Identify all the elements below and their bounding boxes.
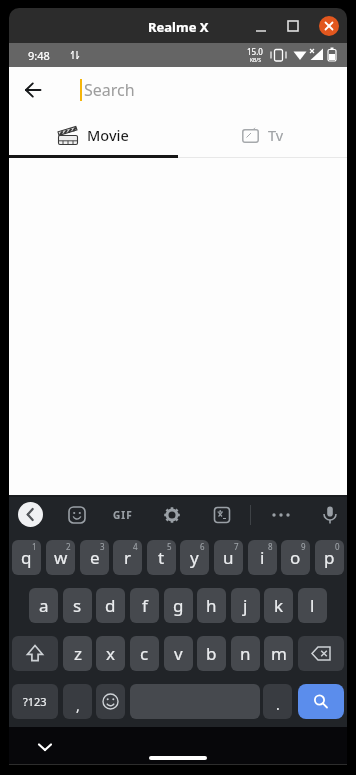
staticText: s	[73, 594, 82, 617]
button[interactable]: v	[164, 636, 193, 671]
button[interactable]	[66, 504, 88, 526]
staticText: h	[206, 594, 217, 617]
staticText: 7	[234, 541, 239, 552]
button[interactable]: m	[264, 636, 293, 671]
button[interactable]: ,	[63, 684, 92, 719]
button[interactable]: w	[46, 540, 75, 575]
button[interactable]: t	[147, 540, 176, 575]
staticText: p	[324, 546, 335, 569]
staticText: ,	[76, 696, 80, 715]
staticText: y	[190, 546, 199, 569]
button[interactable]: s	[63, 588, 92, 623]
button[interactable]	[281, 14, 305, 38]
staticText: i	[260, 546, 265, 569]
button[interactable]	[33, 735, 57, 759]
staticText: o	[290, 546, 301, 569]
staticText: a	[39, 594, 49, 617]
staticText: j	[243, 594, 248, 617]
staticText: e	[90, 546, 100, 569]
staticText: k	[274, 594, 284, 617]
staticText: Tv	[268, 125, 284, 145]
button[interactable]	[18, 502, 43, 527]
button[interactable]: e	[80, 540, 109, 575]
button[interactable]: f	[130, 588, 159, 623]
button[interactable]: y	[180, 540, 209, 575]
button[interactable]: j	[231, 588, 260, 623]
staticText: 6	[200, 541, 205, 552]
button[interactable]: p	[315, 540, 344, 575]
staticText: KB/S	[250, 57, 261, 64]
button[interactable]: u	[214, 540, 243, 575]
button[interactable]	[17, 74, 49, 106]
staticText: 9:48	[28, 48, 50, 63]
button[interactable]: Movie	[9, 112, 178, 158]
staticText: z	[74, 642, 82, 665]
button[interactable]: x	[96, 636, 125, 671]
button[interactable]: Tv	[178, 112, 347, 158]
button[interactable]	[270, 504, 292, 526]
staticText: u	[223, 546, 234, 569]
button[interactable]: k	[264, 588, 293, 623]
button[interactable]	[298, 636, 344, 671]
staticText: d	[105, 594, 116, 617]
button[interactable]	[249, 14, 273, 38]
staticText: g	[173, 594, 184, 617]
staticText: r	[124, 546, 132, 569]
staticText: ?123	[23, 694, 47, 709]
staticText: 4	[133, 541, 138, 552]
staticText: b	[206, 642, 217, 665]
staticText: .	[276, 695, 280, 714]
button[interactable]: h	[197, 588, 226, 623]
button[interactable]	[319, 504, 341, 526]
staticText: GIF	[113, 508, 133, 522]
button[interactable]: i	[248, 540, 277, 575]
button[interactable]: g	[164, 588, 193, 623]
staticText: Realme X	[148, 18, 209, 36]
staticText: m	[271, 642, 287, 665]
staticText: Movie	[87, 125, 129, 145]
button[interactable]: a	[29, 588, 58, 623]
button[interactable]	[96, 684, 125, 719]
staticText: w	[54, 546, 68, 569]
staticText: q	[21, 546, 32, 569]
button[interactable]: z	[63, 636, 92, 671]
staticText: n	[240, 642, 251, 665]
button[interactable]	[319, 16, 339, 36]
staticText: 15.0	[247, 46, 263, 57]
staticText: c	[140, 642, 149, 665]
button[interactable]	[298, 684, 344, 719]
staticText: 2	[66, 541, 71, 552]
button[interactable]: o	[281, 540, 310, 575]
button[interactable]	[161, 504, 183, 526]
button[interactable]: .	[263, 684, 292, 719]
staticText: v	[174, 642, 183, 665]
staticText: Search	[84, 79, 135, 101]
staticText: x	[106, 642, 115, 665]
button[interactable]: d	[96, 588, 125, 623]
staticText: 9	[301, 541, 306, 552]
button[interactable]	[211, 504, 233, 526]
staticText: 0	[335, 541, 340, 552]
staticText: 8	[268, 541, 273, 552]
staticText: l	[310, 594, 315, 617]
button[interactable]: r	[113, 540, 142, 575]
staticText: t	[158, 546, 165, 569]
button[interactable]: ?123	[12, 684, 58, 719]
staticText: 3	[100, 541, 105, 552]
staticText: 5	[167, 541, 172, 552]
button[interactable]: n	[231, 636, 260, 671]
button[interactable]	[12, 636, 58, 671]
button[interactable]: b	[197, 636, 226, 671]
button[interactable]: l	[298, 588, 327, 623]
button[interactable]: q	[12, 540, 41, 575]
staticText: f	[142, 594, 148, 617]
staticText: 1	[32, 541, 37, 552]
button[interactable]: c	[130, 636, 159, 671]
